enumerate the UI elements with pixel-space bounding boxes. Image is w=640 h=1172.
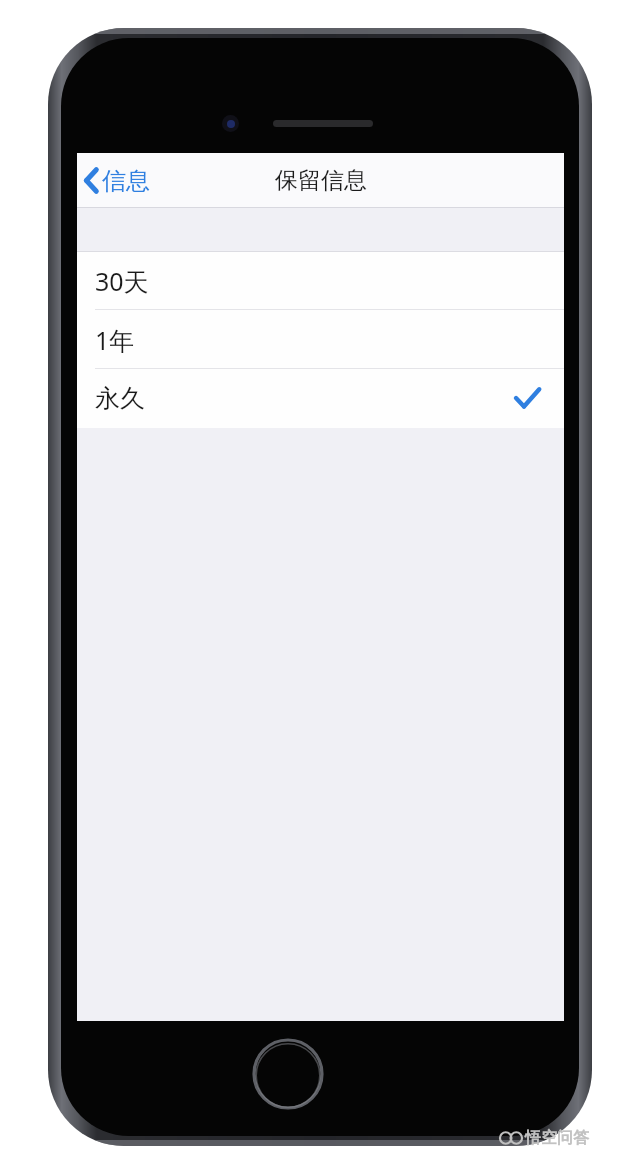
staticText: 信息	[102, 166, 150, 196]
button[interactable]: 永久	[77, 369, 564, 428]
button[interactable]: Home	[252, 1038, 324, 1110]
button[interactable]: 30天	[77, 251, 564, 310]
staticText: 永久	[95, 383, 145, 414]
staticText: 1年	[95, 323, 135, 357]
staticText: 保留信息	[275, 166, 367, 195]
button[interactable]: 1年	[77, 310, 564, 369]
staticText: 悟空问答	[525, 1128, 589, 1148]
staticText: 30天	[95, 264, 149, 298]
button[interactable]: 信息	[84, 153, 150, 208]
